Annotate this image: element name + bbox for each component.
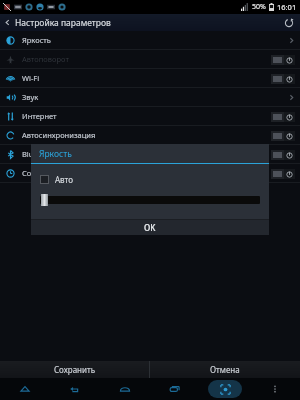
staticText: Автоповорот (22, 54, 69, 64)
button[interactable]: OK (31, 220, 269, 235)
button[interactable]: Сохранить (0, 361, 149, 378)
staticText: 16:01 (277, 2, 297, 12)
staticText: Wi-Fi (22, 73, 40, 83)
button[interactable]: Toggle (271, 54, 295, 65)
button[interactable]: Автосинхронизация (0, 126, 300, 144)
button[interactable]: Home (100, 378, 150, 400)
staticText: Яркость (22, 35, 51, 45)
button[interactable]: Toggle (271, 73, 295, 84)
button[interactable]: Сон (0, 164, 300, 182)
button[interactable]: Интернет (0, 107, 300, 125)
button[interactable]: Brightness slider (40, 194, 260, 206)
button[interactable]: Авто (40, 174, 73, 185)
staticText: Автосинхронизация (22, 130, 96, 140)
button[interactable]: Toggle (271, 111, 295, 122)
staticText: Отмена (210, 364, 240, 375)
staticText: Сон (22, 168, 36, 178)
staticText: 50% (252, 2, 266, 12)
button[interactable]: Screenshot (208, 380, 242, 398)
button[interactable]: Toggle (271, 130, 295, 141)
staticText: Яркость (39, 148, 72, 160)
button[interactable]: Back (50, 378, 100, 400)
staticText: Сохранить (54, 364, 96, 375)
button[interactable]: Reset (278, 14, 300, 31)
staticText: Интернет (22, 111, 57, 121)
staticText: Настройка параметров (15, 17, 111, 29)
staticText: OK (144, 222, 156, 233)
button[interactable]: Up (0, 378, 50, 400)
staticText: Bluetooth (22, 149, 57, 159)
button[interactable]: Bluetooth (0, 145, 300, 163)
button[interactable]: Автоповорот (0, 50, 300, 68)
button[interactable]: Настройка параметров (0, 14, 117, 31)
button[interactable]: More options (250, 378, 300, 400)
button[interactable]: Wi-Fi (0, 69, 300, 87)
button[interactable]: Звук (0, 88, 300, 106)
button[interactable]: Toggle (271, 168, 295, 179)
staticText: Авто (55, 174, 73, 185)
button[interactable]: Recents (150, 378, 200, 400)
staticText: Звук (22, 92, 39, 102)
button[interactable]: Toggle (271, 149, 295, 160)
button[interactable]: Яркость (0, 31, 300, 49)
button[interactable]: Отмена (150, 361, 300, 378)
